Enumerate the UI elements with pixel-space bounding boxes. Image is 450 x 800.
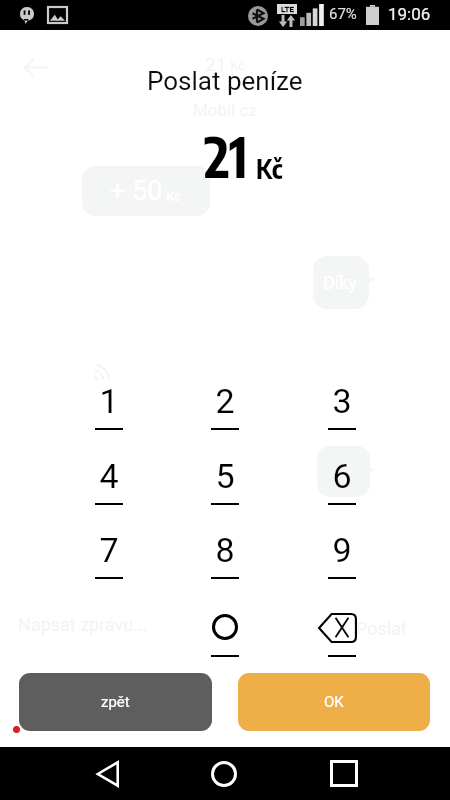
button[interactable]: 8 [187,526,263,592]
staticText: 21 [204,121,248,190]
staticText: 21 [205,53,227,75]
staticText: 5 [215,456,235,496]
staticText: 2 [215,381,235,421]
staticText: 67% [329,5,357,23]
staticText: 8 [215,530,235,570]
staticText: zpět [101,693,130,711]
staticText: Díky [323,272,357,293]
staticText: 9 [332,530,352,570]
staticText: 19:06 [388,4,431,24]
button[interactable]: 4 [71,452,147,518]
button[interactable]: zpět [19,673,212,731]
staticText: 6 [332,456,352,496]
staticText: Poslat [356,618,407,639]
button[interactable]: 0 [187,601,263,667]
staticText: 4 [99,456,119,496]
button[interactable]: 7 [71,526,147,592]
button[interactable]: 1 [71,377,147,443]
button[interactable]: Back [78,747,136,800]
staticText: Napsat zprávu... [18,614,148,635]
staticText: LTE [281,5,294,14]
button[interactable]: 6 [304,452,380,518]
staticText: Kč [163,189,182,204]
staticText: Poslat peníze [147,66,303,96]
staticText: Mobil cz [193,100,257,120]
staticText: 3 [332,381,352,421]
staticText: OK [324,693,344,711]
staticText: Kč [256,151,283,185]
button[interactable]: Backspace [304,601,380,667]
staticText: 1 [99,381,119,421]
staticText: 7 [99,530,119,570]
button[interactable]: 9 [304,526,380,592]
button[interactable]: 5 [187,452,263,518]
staticText: Kč [227,58,246,73]
button[interactable]: 2 [187,377,263,443]
button[interactable]: OK [238,673,430,731]
button[interactable]: Recents [315,747,373,800]
staticText: + 50 [110,175,163,207]
button[interactable]: 3 [304,377,380,443]
button[interactable]: Home [195,747,253,800]
